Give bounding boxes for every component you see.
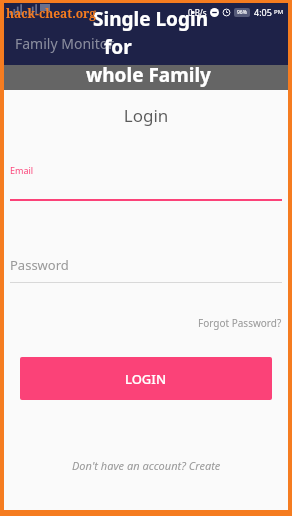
staticText: hack-cheat.org	[6, 5, 97, 21]
staticText: Single Login	[93, 6, 208, 32]
button[interactable]: LOGIN	[20, 357, 272, 400]
staticText: whole Family	[86, 62, 211, 88]
button[interactable]: Password	[10, 256, 282, 283]
staticText: Password	[10, 256, 69, 274]
button[interactable]: Don't have an account? Create	[69, 455, 224, 476]
staticText: 4:05	[254, 6, 272, 18]
staticText: Forgot Password?	[198, 316, 282, 330]
staticText: PM	[274, 8, 284, 16]
staticText: 96%	[237, 9, 247, 16]
button[interactable]: Forgot Password?	[196, 314, 284, 332]
staticText: Family Monitor	[15, 34, 114, 53]
staticText: Login	[4, 104, 288, 127]
button[interactable]: Email	[10, 164, 282, 201]
staticText: Don't have an account? Create	[72, 458, 221, 473]
staticText: Email	[10, 164, 34, 176]
staticText: 0 B/s	[188, 7, 207, 18]
staticText: LOGIN	[125, 370, 167, 388]
staticText: for	[104, 34, 132, 60]
